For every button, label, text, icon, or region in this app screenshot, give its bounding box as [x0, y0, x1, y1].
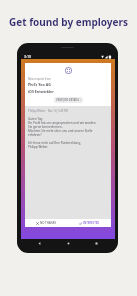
staticText: Philipp Weber · Nov 14, 5:49 PM	[28, 109, 68, 113]
button[interactable]: NO THANKS	[25, 219, 68, 227]
staticText: 3:10	[24, 54, 32, 59]
button[interactable]: VIEW JOB DETAILS ›	[54, 97, 83, 103]
staticText: iOS Entwickler	[28, 89, 54, 94]
staticText: INTERESTED	[83, 221, 100, 225]
button[interactable]: INTERESTED	[68, 219, 111, 227]
button[interactable]: Recent apps	[92, 241, 101, 246]
staticText: Get found by employers	[0, 15, 137, 29]
button[interactable]: Back	[35, 241, 44, 246]
staticText: NO THANKS	[40, 221, 57, 225]
staticText: VIEW JOB DETAILS ›	[56, 98, 81, 102]
staticText: New request from	[28, 77, 51, 81]
staticText: Phil's Yoo AG	[28, 82, 51, 87]
staticText: Guten Tag Ihr Profil hat uns angesproche…	[28, 117, 96, 149]
button[interactable]: Home	[64, 241, 73, 246]
